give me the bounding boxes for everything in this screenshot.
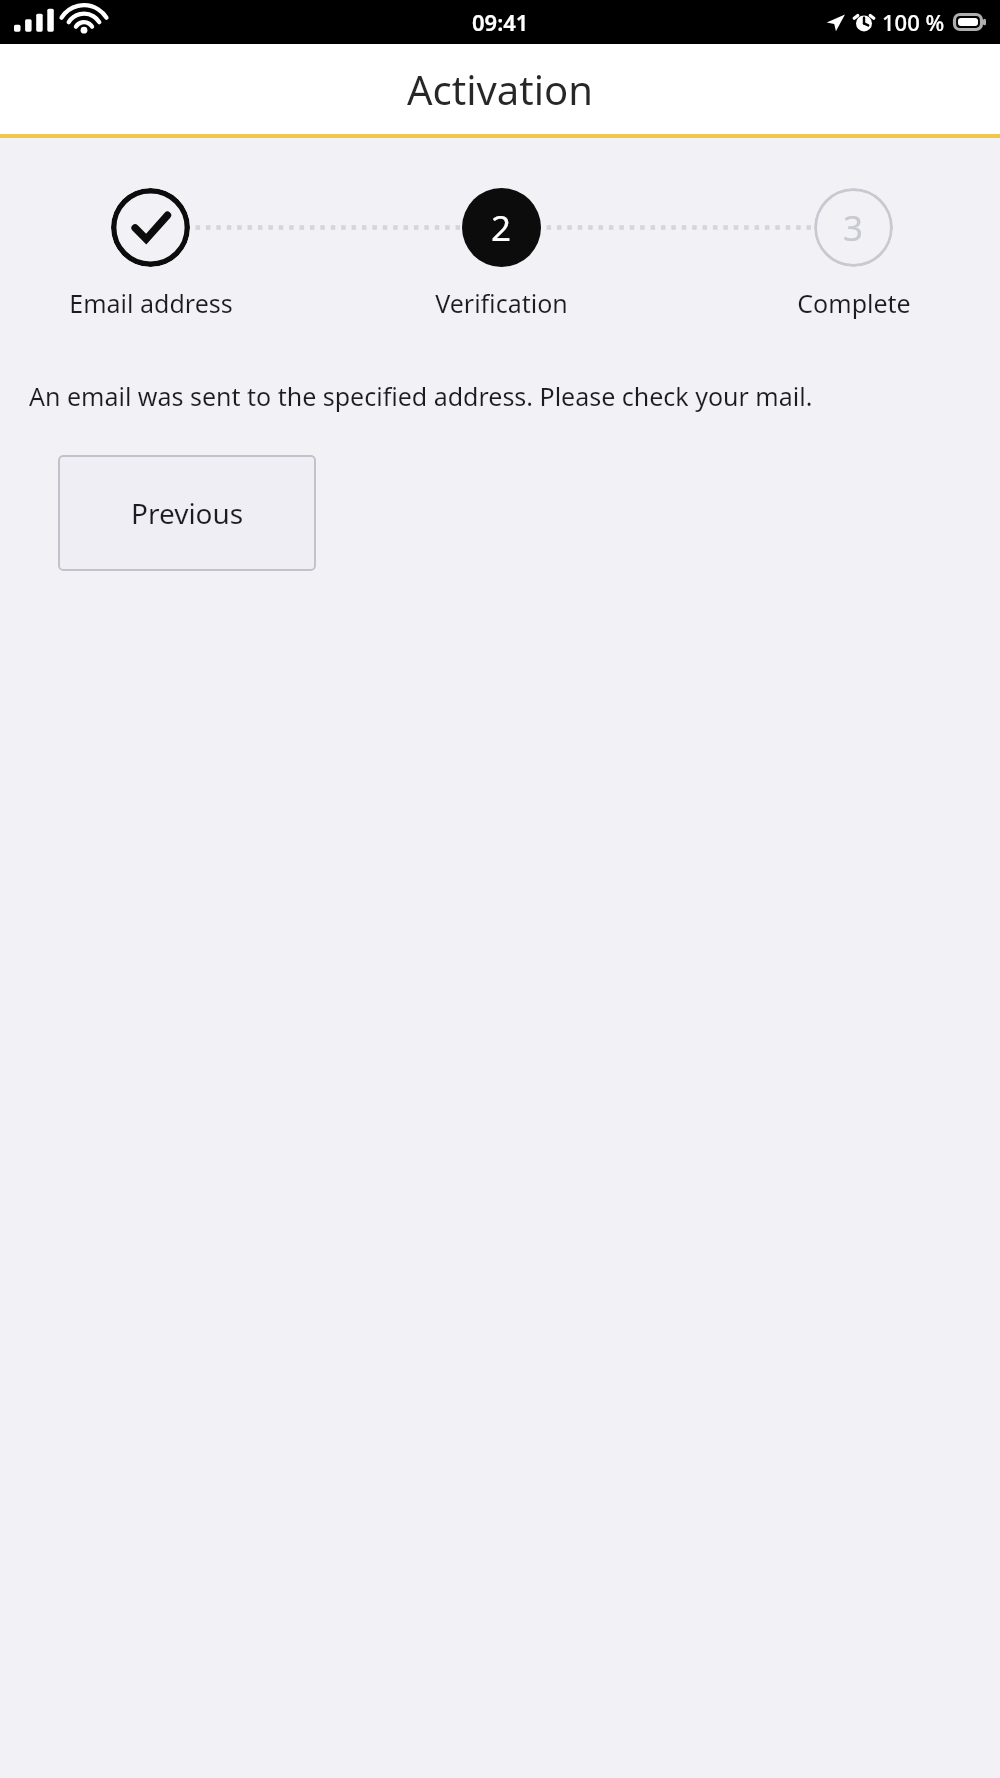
staticText: 100 % xyxy=(882,7,945,37)
staticText: 2 xyxy=(491,204,512,252)
staticText: Activation xyxy=(407,62,593,116)
staticText: Email address xyxy=(69,286,233,320)
staticText: 3 xyxy=(843,204,864,252)
button[interactable]: 3 xyxy=(814,188,893,267)
staticText: Complete xyxy=(797,286,911,320)
staticText: 09:41 xyxy=(472,7,529,37)
button[interactable]: Step 1, Email address, completed xyxy=(111,188,190,267)
staticText: An email was sent to the specified addre… xyxy=(29,379,813,413)
staticText: Verification xyxy=(435,286,568,320)
button[interactable]: 2 xyxy=(462,188,541,267)
button[interactable]: Previous xyxy=(58,455,316,571)
staticText: Previous xyxy=(131,494,244,532)
